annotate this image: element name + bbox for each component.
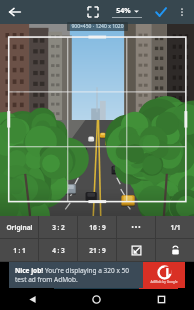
button[interactable]: Home bbox=[64, 289, 129, 310]
button[interactable]: Back bbox=[6, 3, 24, 21]
staticText: 1/1 bbox=[170, 223, 181, 232]
staticText: 21 : 9 bbox=[89, 246, 106, 255]
button[interactable]: Back bbox=[0, 289, 64, 310]
staticText: Nice job! bbox=[15, 266, 45, 275]
button[interactable]: More options bbox=[173, 3, 191, 21]
staticText: 3 : 2 bbox=[52, 223, 65, 232]
staticText: 16 : 9 bbox=[89, 223, 106, 232]
button[interactable]: Fit to screen bbox=[83, 2, 103, 22]
button[interactable]: 54% bbox=[111, 6, 143, 18]
button[interactable]: Nice job! bbox=[9, 262, 185, 288]
staticText: 900×450 · 1240 x 1020 bbox=[71, 23, 124, 30]
button[interactable]: 4 : 3 bbox=[39, 239, 77, 261]
button[interactable]: More aspect ratios bbox=[117, 216, 155, 238]
staticText: Original bbox=[6, 223, 33, 232]
staticText: You're displaying a 320 x 50 bbox=[45, 266, 130, 275]
staticText: 54% bbox=[116, 6, 131, 16]
button[interactable]: 3 : 2 bbox=[39, 216, 77, 238]
button[interactable]: Apply bbox=[151, 2, 171, 22]
button[interactable]: 21 : 9 bbox=[78, 239, 116, 261]
staticText: 4 : 3 bbox=[52, 246, 65, 255]
button[interactable]: 1/1 bbox=[156, 216, 194, 238]
staticText: 1 : 1 bbox=[13, 246, 26, 255]
staticText: test ad from AdMob. bbox=[15, 275, 78, 284]
button[interactable]: 1 : 1 bbox=[0, 239, 38, 261]
button[interactable]: Lock aspect ratio bbox=[156, 239, 194, 261]
button[interactable]: Original bbox=[0, 216, 38, 238]
button[interactable]: Recent apps bbox=[129, 289, 194, 310]
button[interactable]: Rotate crop bbox=[117, 239, 155, 261]
staticText: AdMob by Google bbox=[150, 280, 178, 284]
button[interactable]: 16 : 9 bbox=[78, 216, 116, 238]
